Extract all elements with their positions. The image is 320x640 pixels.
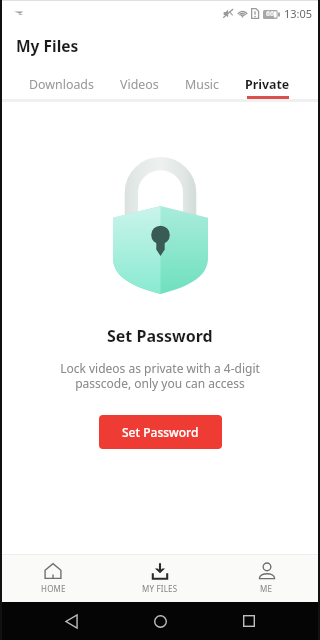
button[interactable]: Music — [172, 69, 232, 99]
button[interactable]: ME — [213, 554, 320, 602]
staticText: 66 — [266, 9, 275, 19]
button[interactable]: Home — [143, 604, 177, 638]
staticText: Music — [185, 76, 219, 93]
staticText: MY FILES — [142, 583, 178, 594]
button[interactable]: Set Password — [99, 415, 222, 449]
staticText: Set Password — [122, 424, 199, 440]
staticText: Private — [245, 76, 290, 93]
button[interactable]: MY FILES — [106, 554, 213, 602]
staticText: Set Password — [107, 325, 213, 347]
button[interactable]: Downloads — [16, 69, 107, 99]
staticText: Downloads — [29, 76, 94, 93]
staticText: HOME — [41, 583, 66, 594]
button[interactable]: Videos — [107, 69, 172, 99]
button[interactable]: HOME — [0, 554, 106, 602]
staticText: Lock videos as private with a 4-digit pa… — [60, 360, 260, 392]
staticText: Videos — [120, 76, 159, 93]
button[interactable]: Private — [232, 69, 303, 99]
staticText: 13:05 — [284, 6, 313, 21]
staticText: My Files — [16, 35, 79, 56]
staticText: ME — [260, 583, 273, 594]
button[interactable]: Recents — [232, 604, 266, 638]
button[interactable]: Back — [55, 604, 89, 638]
